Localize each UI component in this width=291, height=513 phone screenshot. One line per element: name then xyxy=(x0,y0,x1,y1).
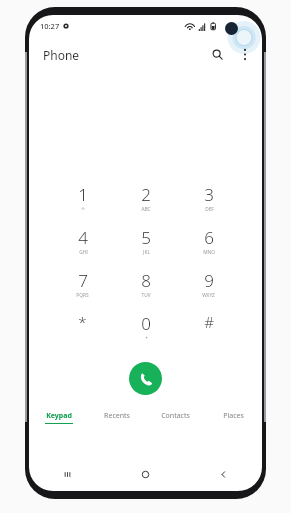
button[interactable]: 7 xyxy=(51,269,114,312)
button[interactable]: Call xyxy=(129,362,162,395)
staticText: 5 xyxy=(141,226,151,249)
staticText: WXYZ xyxy=(202,292,215,299)
button[interactable]: Recents xyxy=(88,411,146,433)
staticText: 0 xyxy=(141,312,151,335)
staticText: 7 xyxy=(78,269,88,292)
staticText: GHI xyxy=(79,249,88,256)
staticText: 1 xyxy=(78,183,88,206)
button[interactable]: Back xyxy=(184,461,262,487)
staticText: + xyxy=(145,335,148,342)
button[interactable]: Contacts xyxy=(146,411,204,433)
button[interactable]: 5 xyxy=(114,226,177,269)
button[interactable]: Home xyxy=(106,461,184,487)
staticText: MNO xyxy=(203,249,215,256)
button[interactable]: 9 xyxy=(177,269,240,312)
button[interactable]: Keypad xyxy=(29,411,88,433)
staticText: Recents xyxy=(104,411,130,421)
button[interactable]: Recents xyxy=(29,461,106,487)
staticText: 10:27 xyxy=(40,21,60,31)
button[interactable]: 8 xyxy=(114,269,177,312)
staticText: 8 xyxy=(141,269,151,292)
staticText: TUV xyxy=(141,292,151,299)
staticText: 2 xyxy=(141,183,151,206)
staticText: Phone xyxy=(43,47,80,63)
button[interactable]: 2 xyxy=(114,183,177,226)
staticText: PQRS xyxy=(76,292,89,299)
button[interactable]: Places xyxy=(204,411,262,433)
button[interactable]: # xyxy=(177,312,240,352)
button[interactable]: 0 xyxy=(114,312,177,352)
staticText: * xyxy=(78,312,87,332)
button[interactable]: 3 xyxy=(177,183,240,226)
staticText: Contacts xyxy=(161,411,190,421)
button[interactable]: 6 xyxy=(177,226,240,269)
staticText: Places xyxy=(223,411,244,421)
button[interactable]: More options xyxy=(234,43,256,65)
staticText: Keypad xyxy=(46,411,72,421)
button[interactable]: 4 xyxy=(51,226,114,269)
button[interactable]: * xyxy=(51,312,114,352)
staticText: ∞ xyxy=(81,206,85,212)
button[interactable]: Search xyxy=(206,43,228,65)
staticText: JKL xyxy=(143,249,150,256)
staticText: 9 xyxy=(204,269,214,292)
staticText: ABC xyxy=(141,206,151,213)
staticText: # xyxy=(204,312,214,332)
staticText: DEF xyxy=(205,206,214,213)
staticText: 3 xyxy=(204,183,214,206)
staticText: 6 xyxy=(204,226,214,249)
button[interactable]: 1 xyxy=(51,183,114,226)
staticText: 4 xyxy=(78,226,88,249)
